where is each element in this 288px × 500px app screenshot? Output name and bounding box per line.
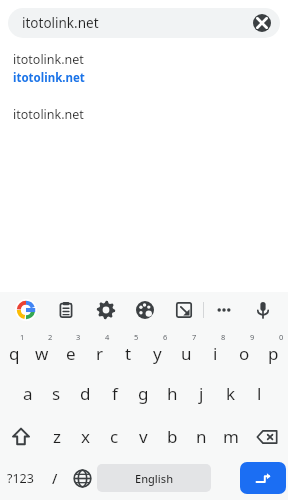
button[interactable]: a — [14, 372, 42, 415]
button[interactable]: z — [42, 415, 71, 458]
staticText: 7 — [192, 332, 197, 342]
staticText: d — [80, 382, 91, 405]
staticText: 1 — [20, 332, 25, 342]
button[interactable]: 7 — [172, 328, 201, 372]
button[interactable]: More options — [204, 292, 243, 328]
staticText: v — [139, 425, 148, 448]
staticText: c — [110, 425, 119, 448]
staticText: a — [23, 382, 33, 405]
staticText: itotolink.net — [13, 51, 84, 68]
button[interactable]: Voice input — [243, 292, 282, 328]
button[interactable]: m — [216, 415, 245, 458]
button[interactable]: / — [41, 458, 68, 498]
button[interactable]: Clear — [253, 14, 271, 32]
button[interactable]: Themes — [125, 292, 164, 328]
staticText: p — [268, 342, 279, 365]
button[interactable]: 3 — [56, 328, 85, 372]
staticText: l — [257, 382, 262, 405]
staticText: 8 — [221, 332, 226, 342]
staticText: g — [138, 382, 149, 405]
staticText: 5 — [134, 332, 139, 342]
button[interactable]: v — [129, 415, 158, 458]
button[interactable]: English — [97, 464, 211, 492]
staticText: i — [213, 342, 218, 365]
staticText: 6 — [163, 332, 168, 342]
button[interactable]: x — [71, 415, 100, 458]
staticText: ?123 — [7, 470, 34, 487]
staticText: o — [239, 342, 250, 365]
button[interactable]: f — [100, 372, 129, 415]
staticText: j — [199, 382, 204, 405]
staticText: s — [52, 382, 61, 405]
button[interactable]: itotolink.net — [0, 50, 288, 69]
button[interactable]: h — [158, 372, 187, 415]
button[interactable]: n — [187, 415, 216, 458]
button[interactable]: Shift — [0, 415, 42, 458]
button[interactable]: k — [216, 372, 245, 415]
button[interactable]: g — [129, 372, 158, 415]
button[interactable]: d — [71, 372, 100, 415]
staticText: itotolink.net — [13, 70, 85, 86]
button[interactable]: Backspace — [245, 415, 288, 458]
staticText: 0 — [279, 332, 284, 342]
button[interactable]: j — [187, 372, 216, 415]
button[interactable]: 4 — [85, 328, 114, 372]
staticText: x — [81, 425, 90, 448]
staticText: h — [167, 382, 178, 405]
staticText: 3 — [76, 332, 81, 342]
staticText: itotolink.net — [22, 14, 99, 32]
button[interactable]: itotolink.net — [0, 69, 288, 86]
staticText: 9 — [250, 332, 255, 342]
button[interactable]: 6 — [143, 328, 172, 372]
staticText: y — [153, 342, 162, 365]
staticText: r — [96, 342, 104, 365]
staticText: English — [135, 471, 174, 486]
button[interactable]: Clipboard — [46, 292, 86, 328]
staticText: n — [196, 425, 207, 448]
staticText: b — [167, 425, 178, 448]
staticText: m — [223, 425, 239, 448]
button[interactable]: 0 — [259, 328, 288, 372]
button[interactable]: ?123 — [0, 458, 41, 498]
button[interactable]: itotolink.net — [0, 104, 288, 124]
staticText: z — [53, 425, 61, 448]
staticText: itotolink.net — [13, 106, 84, 123]
button[interactable]: l — [245, 372, 274, 415]
staticText: / — [52, 469, 58, 488]
button[interactable]: Enter — [240, 462, 286, 494]
button[interactable]: s — [42, 372, 71, 415]
button[interactable]: 8 — [201, 328, 230, 372]
button[interactable]: Settings — [86, 292, 125, 328]
staticText: k — [226, 382, 236, 405]
button[interactable]: Google — [6, 292, 46, 328]
button[interactable]: 2 — [28, 328, 56, 372]
button[interactable]: c — [100, 415, 129, 458]
button[interactable]: Change language — [68, 458, 97, 498]
button[interactable]: 9 — [230, 328, 259, 372]
staticText: f — [112, 382, 118, 405]
button[interactable]: Resize — [164, 292, 203, 328]
button[interactable]: 5 — [114, 328, 143, 372]
staticText: t — [125, 342, 132, 365]
staticText: u — [181, 342, 192, 365]
button[interactable]: b — [158, 415, 187, 458]
button[interactable]: 1 — [0, 328, 28, 372]
staticText: 2 — [48, 332, 53, 342]
staticText: 4 — [105, 332, 110, 342]
staticText: e — [66, 342, 76, 365]
staticText: w — [35, 342, 49, 365]
button[interactable]: itotolink.net — [8, 8, 280, 38]
staticText: q — [9, 342, 20, 365]
